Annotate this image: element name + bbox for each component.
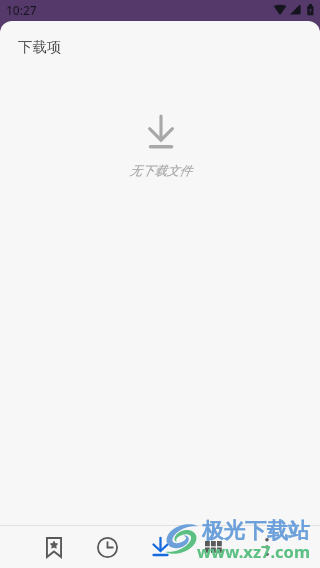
button[interactable]: Downloads <box>134 526 187 568</box>
button[interactable]: History <box>81 526 134 568</box>
staticText: 无下载文件 <box>129 163 192 179</box>
button[interactable]: Bookmarks <box>27 526 81 568</box>
staticText: www.xz7.com <box>197 540 311 562</box>
button[interactable]: More options <box>240 526 293 568</box>
staticText: 下载项 <box>18 38 62 56</box>
button[interactable]: Tabs <box>187 526 240 568</box>
staticText: 10:27 <box>6 2 37 18</box>
staticText: 极光下载站 <box>202 517 310 544</box>
